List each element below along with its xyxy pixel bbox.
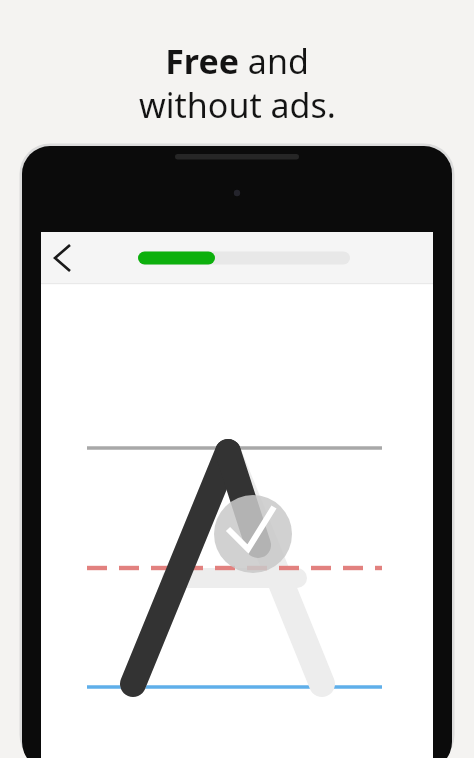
button[interactable]: Letter tracing canvas — [41, 284, 433, 758]
staticText: Free and — [165, 38, 309, 84]
staticText: without ads. — [139, 82, 336, 128]
button[interactable]: Back — [44, 236, 90, 280]
